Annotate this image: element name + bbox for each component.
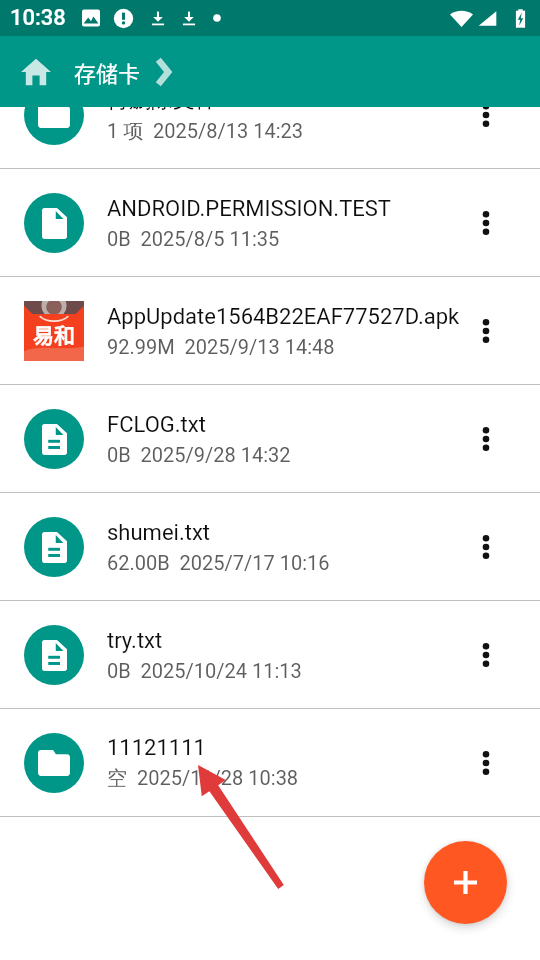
staticText: 92.99M 2025/9/13 14:48 [107, 335, 335, 358]
button[interactable]: ANDROID.PERMISSION.TEST [0, 169, 540, 276]
button[interactable]: More options [461, 601, 511, 708]
staticText: shumei.txt [107, 520, 211, 546]
button[interactable]: Add [424, 841, 507, 924]
staticText: 存储卡 [74, 56, 141, 88]
button[interactable]: More options [461, 385, 511, 492]
button[interactable]: shumei.txt [0, 493, 540, 600]
button[interactable]: try.txt [0, 601, 540, 708]
button[interactable]: 易和 [0, 277, 540, 384]
button[interactable]: 待删除文件 [0, 61, 540, 168]
staticText: 10:38 [10, 5, 66, 31]
staticText: 0B 2025/9/28 14:32 [107, 443, 291, 466]
button[interactable]: More options [461, 61, 511, 168]
button[interactable]: More options [461, 709, 511, 816]
staticText: 0B 2025/8/5 11:35 [107, 227, 280, 250]
staticText: 11121111 [107, 735, 206, 761]
button[interactable]: 11121111 [0, 709, 540, 816]
staticText: 空 2025/11/28 10:38 [107, 766, 299, 791]
staticText: 待删除文件 [107, 86, 217, 114]
button[interactable]: More options [461, 493, 511, 600]
staticText: AppUpdate1564B22EAF77527D.apk [107, 304, 460, 330]
button[interactable]: Home [17, 53, 55, 91]
staticText: 0B 2025/10/24 11:13 [107, 659, 302, 682]
staticText: 1 项 2025/8/13 14:23 [107, 119, 304, 144]
staticText: try.txt [107, 628, 163, 654]
button[interactable]: More options [461, 169, 511, 276]
button[interactable]: More options [461, 277, 511, 384]
staticText: FCLOG.txt [107, 412, 206, 438]
staticText: ANDROID.PERMISSION.TEST [107, 196, 391, 222]
button[interactable]: FCLOG.txt [0, 385, 540, 492]
staticText: 62.00B 2025/7/17 10:16 [107, 551, 330, 574]
staticText: 易和 [33, 319, 75, 349]
other: Forward [155, 57, 185, 87]
